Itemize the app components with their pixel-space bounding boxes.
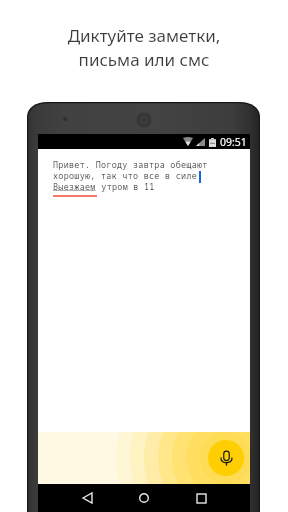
button[interactable]: Back: [76, 487, 98, 509]
staticText: 09:51: [220, 135, 247, 149]
staticText: Привет. Погоду завтра обещают: [53, 159, 208, 170]
staticText: Выезжаем: [53, 181, 96, 192]
staticText: утром в 11: [96, 181, 155, 192]
button[interactable]: Voice input: [208, 440, 244, 476]
button[interactable]: Recents: [190, 487, 212, 509]
button[interactable]: Home: [133, 487, 155, 509]
staticText: хорошую, так что все в силе: [53, 170, 198, 181]
staticText: Диктуйте заметки, письма или смс: [0, 24, 288, 71]
